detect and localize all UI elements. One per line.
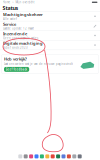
staticText: Digitale machtiging: [3, 41, 43, 46]
button[interactable]: App 3: [29, 154, 33, 158]
button[interactable]: Digitale machtiging: [0, 40, 100, 50]
button[interactable]: App 12: [78, 154, 82, 158]
button[interactable]: App 2: [24, 154, 28, 158]
staticText: Laat ons weten wat je van de nieuwe pagi…: [4, 62, 73, 66]
button[interactable]: App 5: [40, 154, 44, 158]
button[interactable]: Geef feedback: [4, 67, 29, 72]
button[interactable]: Service: [0, 21, 100, 31]
button[interactable]: Inzendende: [0, 31, 100, 40]
staticText: Heb verkijk?: [4, 56, 27, 62]
staticText: Alle actief: [3, 17, 17, 21]
button[interactable]: Machtigingsbeheer: [0, 12, 100, 21]
staticText: Actief sinds 2023: [3, 46, 28, 49]
staticText: Status: [3, 4, 19, 11]
staticText: Geef feedback: [6, 68, 28, 71]
staticText: Geen openstaande acties: [3, 36, 38, 40]
staticText: Service: [3, 21, 16, 27]
staticText: Machtigingsbeheer: [3, 12, 43, 17]
button[interactable]: App 7: [51, 154, 55, 158]
staticText: Laatste update 12 maart: [3, 27, 34, 30]
button[interactable]: App 6: [45, 154, 49, 158]
button[interactable]: App 9: [61, 154, 65, 158]
button[interactable]: App 4: [34, 154, 38, 158]
button[interactable]: App 11: [72, 154, 76, 158]
button[interactable]: App 1: [18, 154, 22, 158]
staticText: Home › Mijn overzicht: [3, 0, 35, 4]
button[interactable]: App 10: [67, 154, 71, 158]
button[interactable]: App 8: [56, 154, 60, 158]
staticText: Inzendende: [3, 31, 27, 36]
